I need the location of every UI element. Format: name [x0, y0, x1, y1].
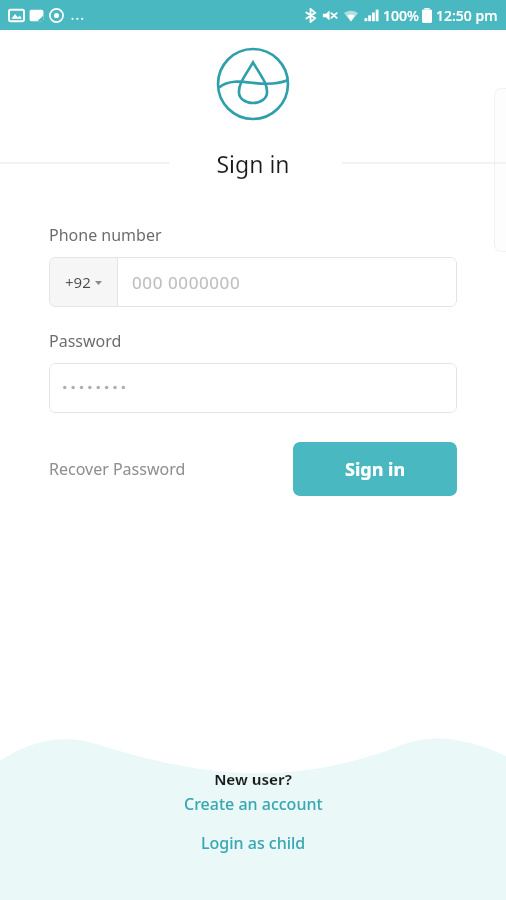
- button[interactable]: Sign in: [293, 442, 457, 496]
- button[interactable]: Create an account: [174, 791, 333, 817]
- button[interactable]: Recover Password: [49, 450, 186, 488]
- staticText: Sign in: [345, 457, 406, 482]
- staticText: Sign in: [0, 148, 506, 179]
- button[interactable]: Select country code: [49, 257, 117, 307]
- staticText: 12:50 pm: [436, 6, 498, 25]
- staticText: Login as child: [201, 832, 306, 854]
- button[interactable]: [49, 363, 457, 413]
- staticText: +92: [65, 272, 91, 292]
- staticText: Create an account: [184, 793, 323, 815]
- staticText: New user?: [214, 769, 292, 789]
- staticText: 000 0000000: [132, 271, 241, 294]
- staticText: Phone number: [49, 224, 162, 246]
- button[interactable]: 000 0000000: [118, 257, 457, 307]
- staticText: Password: [49, 330, 122, 352]
- staticText: Recover Password: [49, 458, 186, 480]
- button[interactable]: Login as child: [191, 830, 316, 856]
- staticText: 100%: [383, 6, 419, 25]
